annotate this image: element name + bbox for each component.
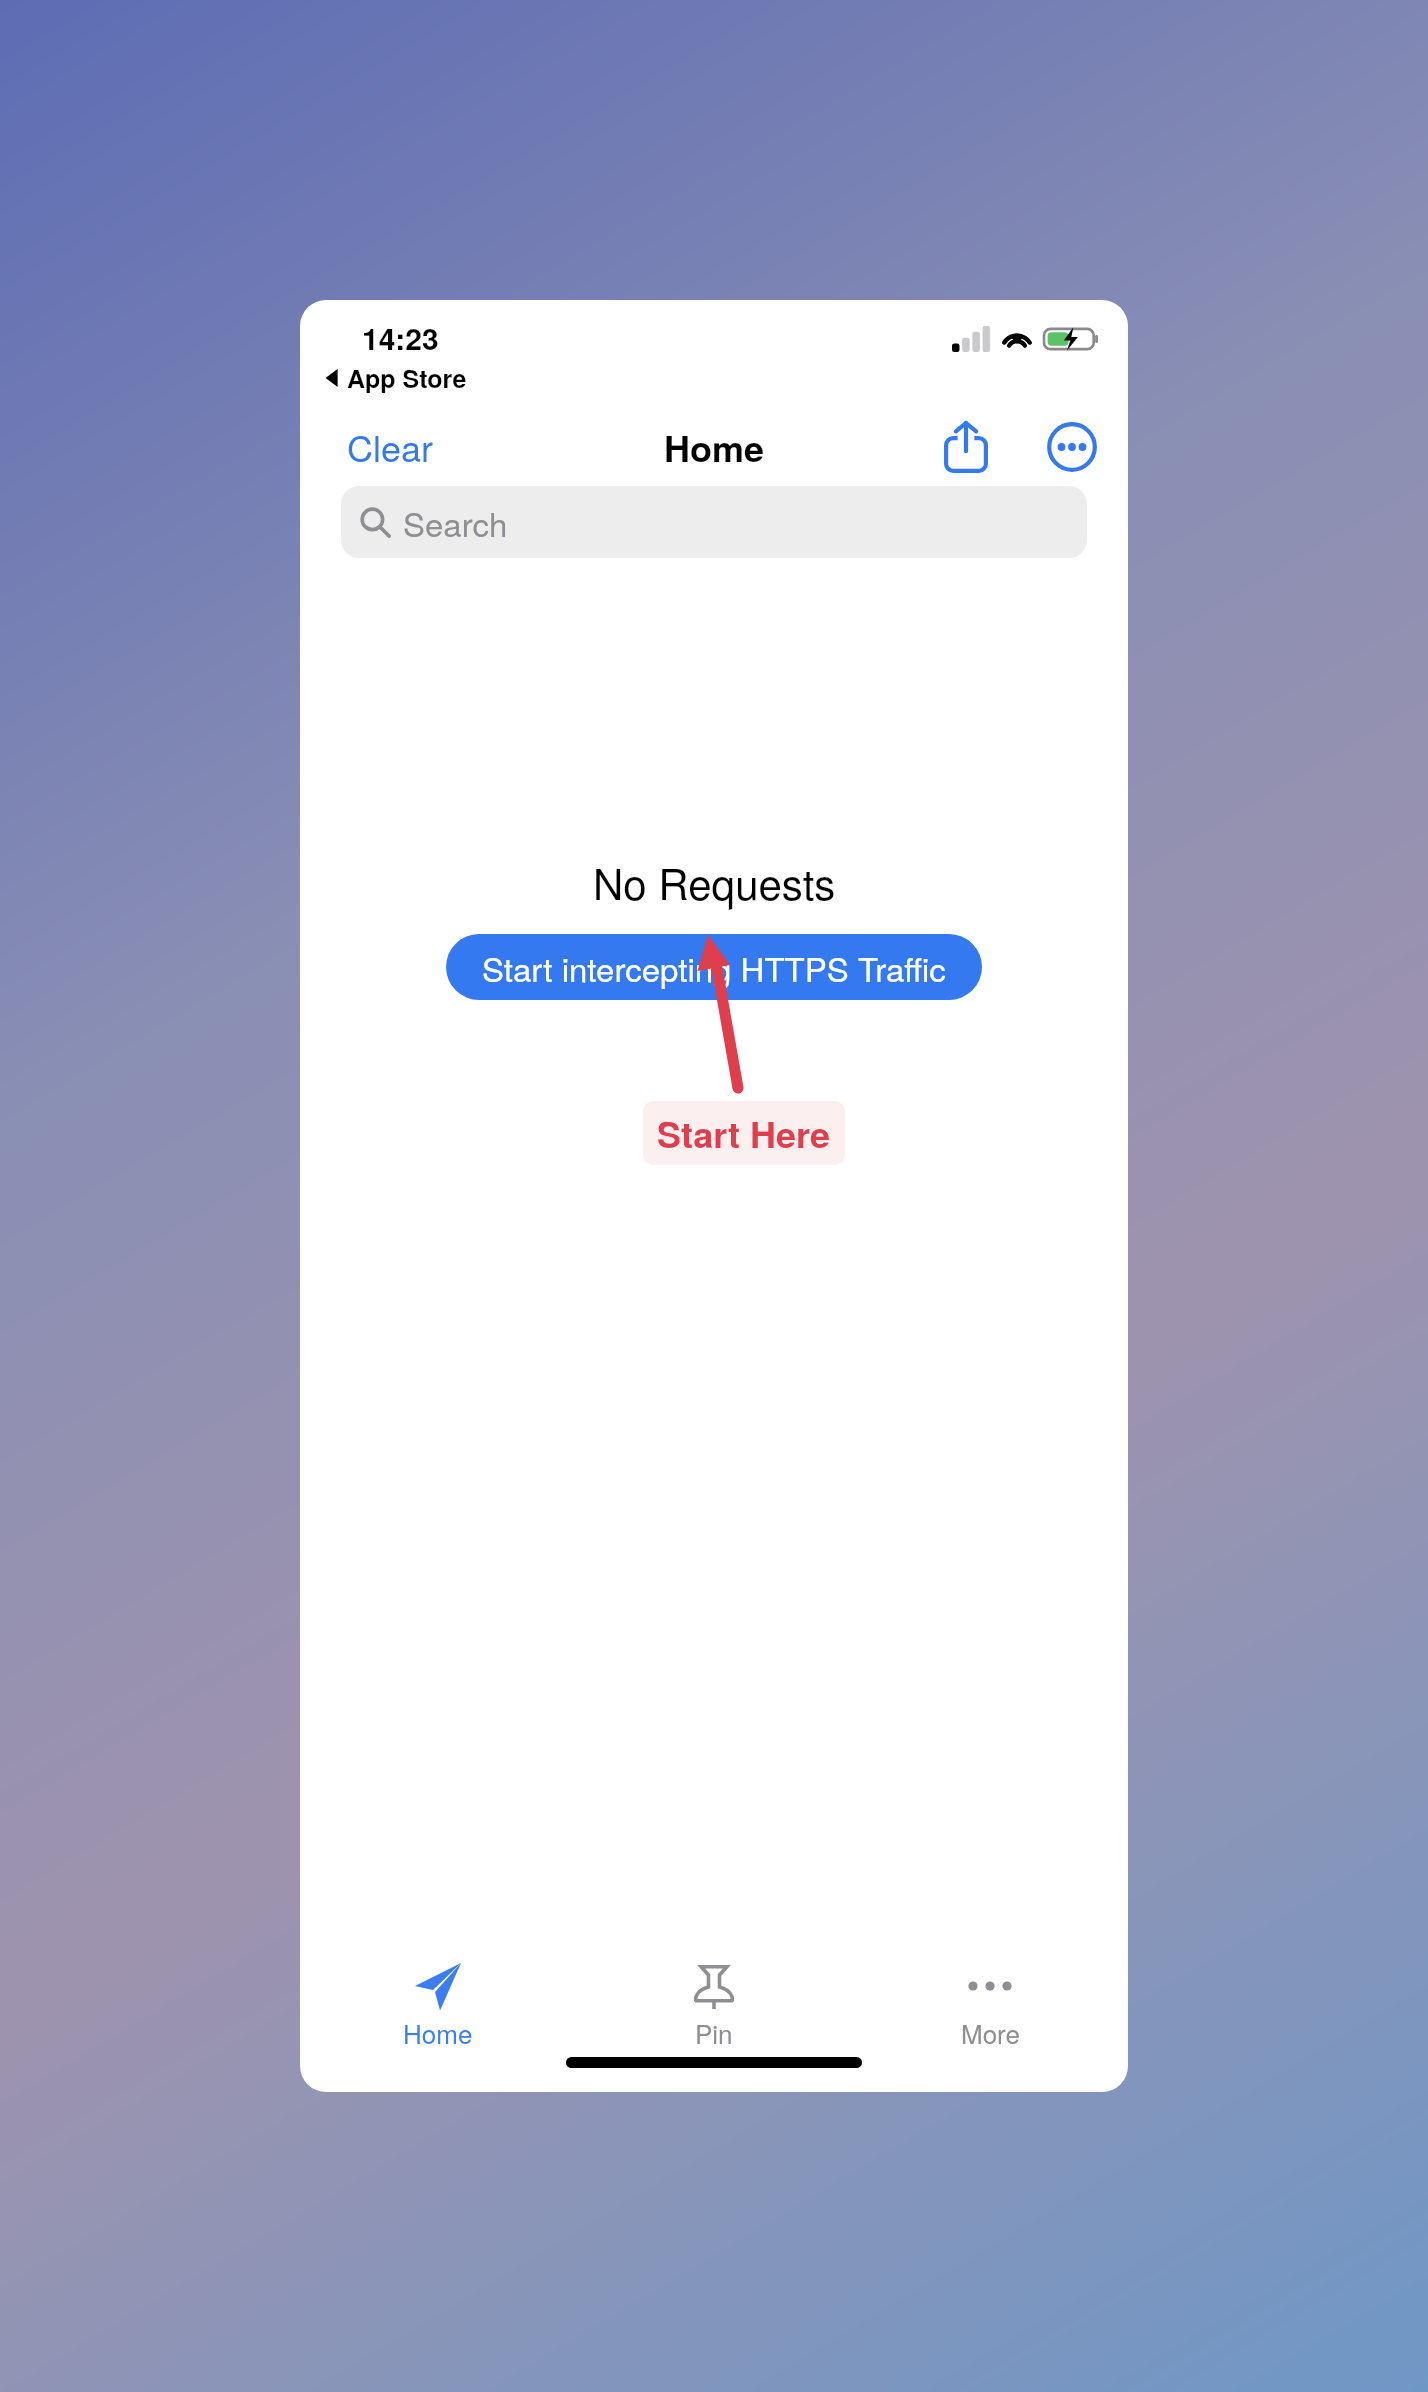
staticText: Start intercepting HTTPS Traffic: [482, 944, 946, 991]
button[interactable]: More options: [1044, 419, 1100, 475]
button[interactable]: Search: [341, 486, 1087, 558]
button[interactable]: More: [852, 1922, 1128, 2050]
staticText: Clear: [347, 421, 434, 473]
button[interactable]: Start intercepting HTTPS Traffic: [446, 934, 982, 1000]
button[interactable]: Home: [300, 1922, 576, 2050]
button[interactable]: Share: [938, 419, 994, 475]
staticText: No Requests: [593, 852, 836, 912]
staticText: Search: [403, 499, 508, 546]
staticText: 14:23: [362, 316, 439, 359]
staticText: More: [961, 2014, 1020, 2050]
staticText: Start Here: [657, 1107, 831, 1159]
staticText: Home: [403, 2014, 473, 2050]
staticText: Pin: [695, 2014, 733, 2050]
button[interactable]: Pin: [576, 1922, 852, 2050]
button[interactable]: Clear: [343, 415, 438, 479]
staticText: Home: [664, 421, 765, 473]
staticText: App Store: [347, 360, 467, 396]
